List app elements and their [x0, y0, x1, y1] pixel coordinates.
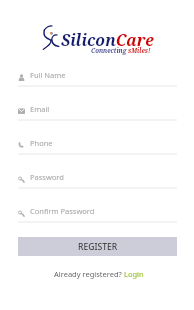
- staticText: Password: [30, 172, 64, 182]
- staticText: Email: [30, 104, 50, 114]
- button[interactable]: Confirm password: [0, 189, 194, 223]
- staticText: Login: [124, 269, 144, 279]
- staticText: Confirm Password: [30, 206, 95, 216]
- staticText: REGISTER: [78, 241, 118, 253]
- button[interactable]: Phone: [0, 121, 194, 155]
- button[interactable]: Login: [124, 269, 144, 279]
- staticText: Full Name: [30, 70, 66, 80]
- button[interactable]: Email: [0, 87, 194, 121]
- staticText: SiliconCare: [61, 29, 154, 51]
- staticText: Phone: [30, 138, 53, 148]
- button[interactable]: Full name: [0, 53, 194, 87]
- staticText: Connecting sMiles!: [91, 46, 151, 54]
- staticText: Already registered?: [54, 269, 122, 279]
- button[interactable]: REGISTER: [18, 237, 177, 256]
- button[interactable]: Password: [0, 155, 194, 189]
